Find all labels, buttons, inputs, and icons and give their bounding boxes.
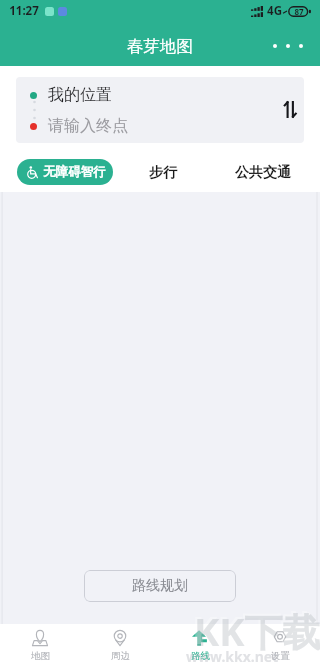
staticText: 路线规划 bbox=[132, 577, 188, 595]
staticText: KK下载 bbox=[194, 605, 320, 657]
staticText: 路线 bbox=[191, 650, 210, 662]
button[interactable]: 地图 bbox=[0, 624, 80, 666]
button[interactable]: 周边 bbox=[80, 624, 160, 666]
staticText: 无障碍智行 bbox=[43, 164, 106, 180]
staticText: 设置 bbox=[271, 650, 290, 662]
staticText: www.kkx.net bbox=[186, 647, 279, 666]
button[interactable]: 路线 bbox=[160, 624, 240, 666]
staticText: 步行 bbox=[149, 164, 177, 182]
button[interactable]: 步行 bbox=[135, 157, 191, 189]
staticText: 我的位置 bbox=[48, 85, 112, 105]
button[interactable]: Swap start and destination bbox=[273, 92, 304, 126]
staticText: 周边 bbox=[111, 650, 130, 662]
staticText: 春芽地图 bbox=[127, 36, 193, 57]
staticText: 地图 bbox=[31, 650, 50, 662]
button[interactable]: 设置 bbox=[240, 624, 320, 666]
staticText: 11:27 bbox=[9, 3, 39, 19]
button[interactable]: 无障碍智行 bbox=[17, 159, 113, 185]
button[interactable]: 公共交通 bbox=[221, 157, 305, 189]
staticText: 87 bbox=[294, 6, 304, 17]
staticText: 公共交通 bbox=[235, 164, 291, 182]
staticText: 4G bbox=[267, 3, 282, 19]
button[interactable]: More options bbox=[263, 30, 320, 62]
button[interactable]: 路线规划 bbox=[84, 570, 236, 602]
staticText: KK下载 bbox=[192, 603, 319, 655]
staticText: 请输入终点 bbox=[48, 116, 128, 136]
